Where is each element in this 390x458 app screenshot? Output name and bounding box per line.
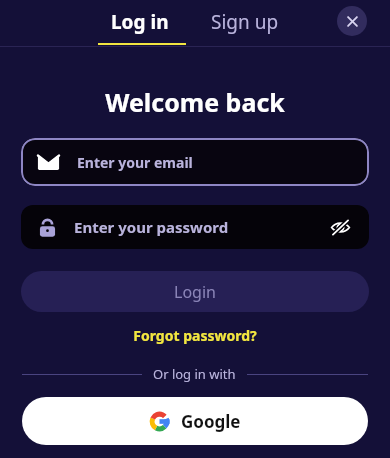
button[interactable]: Login	[21, 271, 369, 312]
staticText: Google	[181, 410, 241, 433]
button[interactable]: Log in	[97, 3, 183, 41]
button[interactable]: Forgot password?	[0, 326, 390, 345]
staticText: Enter your password	[74, 217, 229, 237]
staticText: Enter your email	[77, 153, 193, 172]
staticText: Welcome back	[0, 85, 390, 119]
staticText: Or log in with	[153, 365, 236, 383]
button[interactable]: Google	[22, 397, 368, 445]
button[interactable]: Enter your password	[21, 205, 369, 249]
button[interactable]: Enter your email	[21, 138, 369, 186]
button[interactable]: Sign up	[197, 3, 293, 41]
staticText: Login	[174, 281, 216, 303]
button[interactable]: Show password	[327, 214, 353, 240]
staticText: Sign up	[211, 9, 279, 35]
button[interactable]: Close	[337, 6, 367, 36]
staticText: Log in	[111, 9, 169, 35]
